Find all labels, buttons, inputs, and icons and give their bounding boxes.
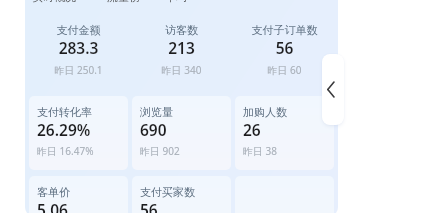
staticText: 浏览量	[140, 105, 173, 119]
staticText: 26.29%	[37, 119, 91, 140]
staticText: 56	[140, 199, 158, 213]
staticText: 支付转化率	[37, 105, 92, 119]
staticText: 690	[140, 119, 167, 140]
button[interactable]: 加购人数	[235, 96, 334, 170]
staticText: 283.3	[29, 37, 128, 58]
staticText: 26	[243, 119, 261, 140]
staticText: 昨日 250.1	[29, 63, 128, 77]
button[interactable]: 支付转化率	[29, 96, 128, 170]
staticText: 访客数	[132, 23, 231, 37]
button[interactable]: 支付买家数	[132, 176, 231, 213]
button[interactable]: 支付金额	[29, 0, 128, 96]
button[interactable]: 支付子订单数	[235, 0, 334, 96]
staticText: 昨日 16.47%	[37, 144, 94, 158]
staticText: 昨日 340	[132, 63, 231, 77]
staticText: 213	[132, 37, 231, 58]
staticText: 支付买家数	[140, 185, 195, 199]
staticText: 56	[235, 37, 334, 58]
staticText: 实时概况	[32, 0, 76, 4]
staticText: 支付子订单数	[235, 23, 334, 37]
button[interactable]: 访客数	[132, 0, 231, 96]
staticText: 流量榜	[107, 0, 140, 4]
button[interactable]: 浏览量	[132, 96, 231, 170]
staticText: 昨日 902	[140, 144, 180, 158]
staticText: 加购人数	[243, 105, 287, 119]
staticText: 客单价	[37, 185, 70, 199]
staticText: 支付金额	[29, 23, 128, 37]
staticText: 平均	[165, 0, 187, 4]
staticText: 昨日 38	[243, 144, 278, 158]
button[interactable]: Expand panel	[322, 54, 344, 125]
staticText: 5.06	[37, 199, 68, 213]
button[interactable]: 客单价	[29, 176, 128, 213]
staticText: 昨日 60	[235, 63, 334, 77]
